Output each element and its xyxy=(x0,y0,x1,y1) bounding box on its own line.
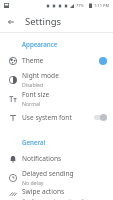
button[interactable]: Back xyxy=(4,15,18,29)
button[interactable]: Notifications xyxy=(0,149,113,168)
staticText: Use system font xyxy=(22,113,72,122)
staticText: 1:11 PM xyxy=(94,3,110,8)
button[interactable]: Theme xyxy=(0,51,113,70)
staticText: Night mode xyxy=(22,71,59,80)
button[interactable]: Swipe actions xyxy=(0,187,113,200)
button[interactable]: Use system font xyxy=(0,108,113,127)
staticText: Swipe actions xyxy=(22,187,65,196)
button[interactable]: Font size xyxy=(0,89,113,108)
staticText: Delayed sending xyxy=(22,169,74,178)
button[interactable]: Night mode xyxy=(0,70,113,89)
staticText: Configure swipe actions for conversation… xyxy=(22,197,107,200)
staticText: General xyxy=(22,138,46,146)
staticText: Font size xyxy=(22,90,50,99)
staticText: Theme xyxy=(22,56,44,65)
staticText: Appearance xyxy=(22,40,58,48)
staticText: Settings xyxy=(25,15,62,28)
staticText: Notifications xyxy=(22,154,62,163)
button[interactable]: Theme color xyxy=(99,57,107,65)
staticText: Normal xyxy=(22,100,41,107)
staticText: 77% xyxy=(76,3,84,8)
staticText: Disabled xyxy=(22,81,44,88)
button[interactable]: Delayed sending xyxy=(0,168,113,187)
staticText: No delay xyxy=(22,179,44,186)
button[interactable]: Use system font toggle xyxy=(93,113,107,122)
